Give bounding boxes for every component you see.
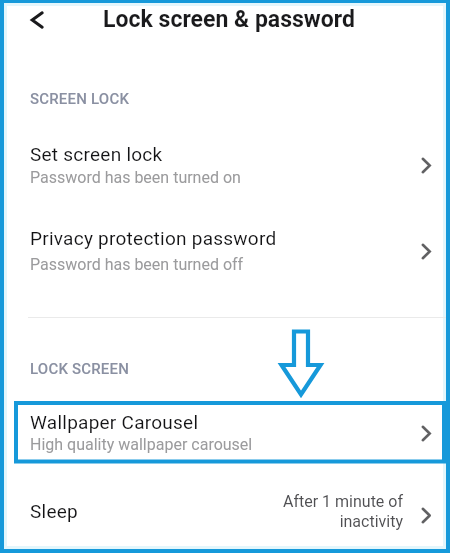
button[interactable]: Wallpaper Carousel: [0, 399, 450, 465]
staticText: LOCK SCREEN: [30, 360, 130, 378]
staticText: Wallpaper Carousel: [30, 411, 199, 433]
button[interactable]: Sleep: [0, 480, 450, 548]
staticText: SCREEN LOCK: [30, 90, 130, 108]
staticText: Set screen lock: [30, 143, 163, 165]
staticText: Password has been turned off: [30, 255, 244, 274]
staticText: After 1 minute of: [203, 492, 403, 511]
button[interactable]: Set screen lock: [0, 126, 450, 200]
staticText: Password has been turned on: [30, 168, 241, 187]
button[interactable]: Privacy protection password: [0, 212, 450, 288]
staticText: Privacy protection password: [30, 227, 277, 249]
staticText: High quality wallpaper carousel: [30, 435, 253, 454]
staticText: Sleep: [30, 500, 78, 522]
button[interactable]: [18, 5, 56, 35]
staticText: Lock screen & password: [4, 6, 450, 33]
staticText: inactivity: [203, 512, 403, 531]
